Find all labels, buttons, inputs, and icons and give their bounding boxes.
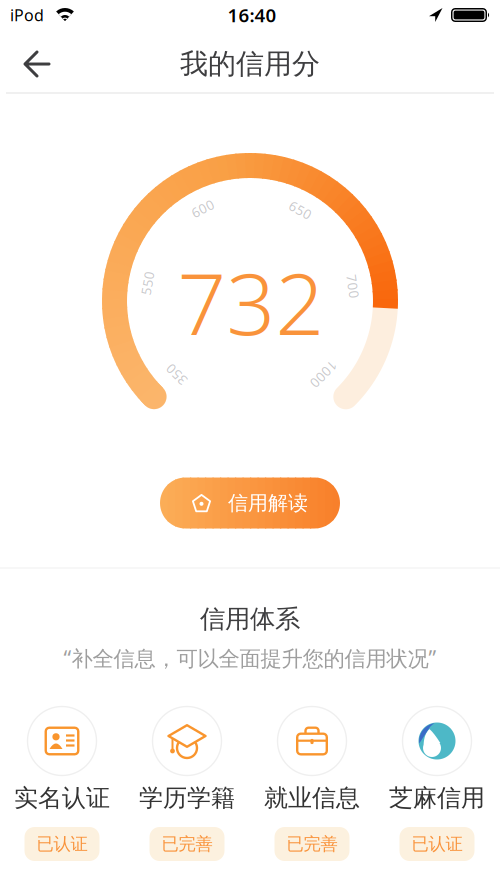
staticText: “补全信息，可以全面提升您的信用状况” — [63, 644, 436, 672]
staticText: 已认证 — [411, 833, 462, 855]
staticText: 350 — [164, 366, 188, 383]
staticText: 已认证 — [36, 833, 87, 855]
staticText: 我的信用分 — [180, 47, 320, 81]
staticText: 已完善 — [286, 833, 337, 855]
button[interactable]: Back — [15, 42, 59, 85]
staticText: 学历学籍 — [139, 783, 235, 813]
staticText: 就业信息 — [264, 783, 360, 813]
button[interactable]: 学历学籍 — [128, 706, 246, 861]
staticText: 信用解读 — [228, 491, 308, 515]
button[interactable]: 实名认证 — [3, 706, 121, 861]
staticText: 实名认证 — [14, 783, 110, 813]
staticText: 700 — [341, 278, 365, 295]
button[interactable]: 芝麻信用 — [378, 706, 496, 861]
staticText: 信用体系 — [200, 603, 300, 634]
staticText: iPod — [10, 4, 44, 26]
staticText: 600 — [191, 199, 215, 217]
staticText: 650 — [288, 201, 312, 219]
staticText: 550 — [136, 274, 160, 292]
button[interactable]: 就业信息 — [253, 706, 371, 861]
staticText: 16:40 — [227, 3, 276, 27]
staticText: 芝麻信用 — [389, 783, 485, 813]
staticText: 已完善 — [161, 833, 212, 855]
button[interactable]: 信用解读 — [160, 477, 340, 528]
staticText: 1000 — [307, 366, 339, 383]
staticText: 732 — [177, 245, 324, 359]
